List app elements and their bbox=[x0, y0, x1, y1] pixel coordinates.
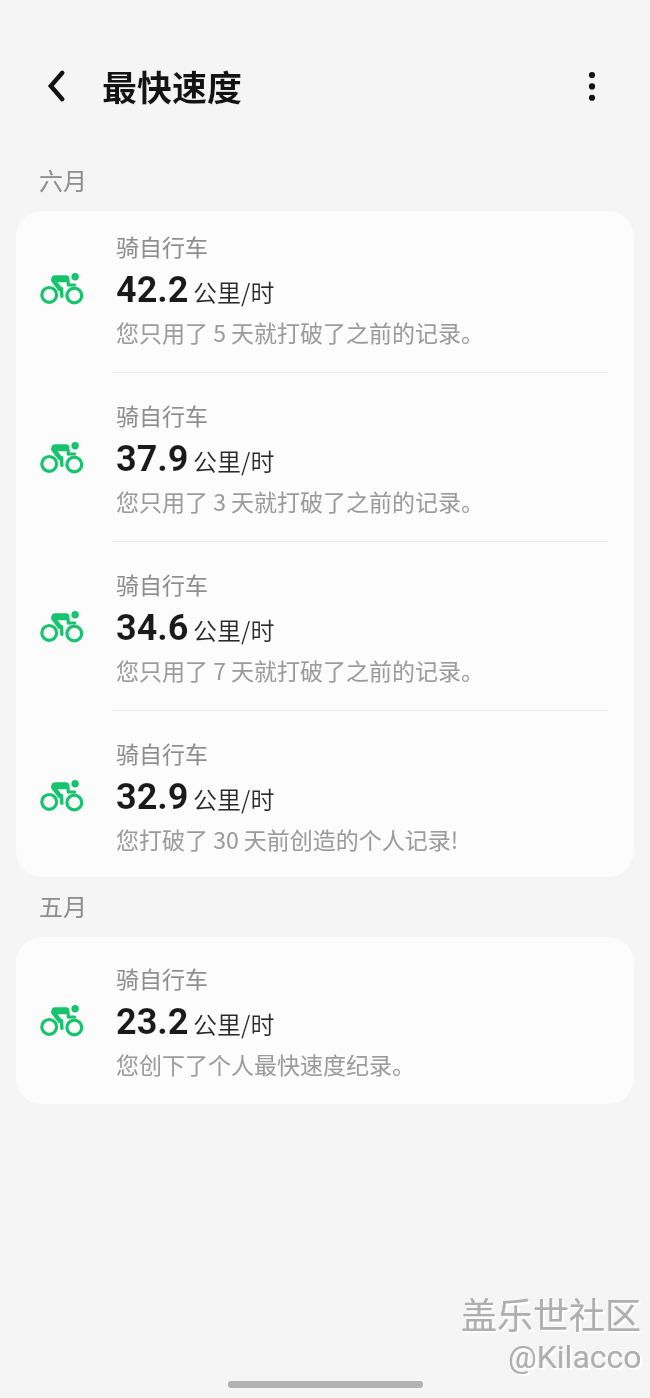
staticText: 骑自行车 bbox=[116, 398, 208, 431]
staticText: 五月 bbox=[39, 888, 87, 923]
button[interactable]: 骑自行车 bbox=[16, 937, 634, 1104]
staticText: 您只用了 3 天就打破了之前的记录。 bbox=[116, 484, 485, 517]
staticText: 34.6 bbox=[116, 607, 189, 649]
staticText: 您只用了 5 天就打破了之前的记录。 bbox=[116, 315, 485, 348]
staticText: @Kilacco bbox=[510, 1340, 644, 1378]
staticText: 您打破了 30 天前创造的个人记录! bbox=[116, 822, 459, 855]
staticText: @Kilacco bbox=[508, 1338, 642, 1376]
button[interactable]: 骑自行车 bbox=[16, 542, 634, 710]
staticText: 公里/时 bbox=[193, 443, 275, 478]
button[interactable]: 骑自行车 bbox=[16, 211, 634, 372]
button[interactable]: More options bbox=[562, 56, 622, 116]
button[interactable]: 骑自行车 bbox=[16, 373, 634, 541]
staticText: 23.2 bbox=[116, 1001, 189, 1043]
button[interactable]: Back bbox=[18, 56, 78, 116]
staticText: 骑自行车 bbox=[116, 567, 208, 600]
staticText: 最快速度 bbox=[102, 60, 243, 111]
staticText: 32.9 bbox=[116, 776, 189, 818]
staticText: 公里/时 bbox=[193, 274, 275, 309]
staticText: 公里/时 bbox=[193, 781, 275, 816]
staticText: 您只用了 7 天就打破了之前的记录。 bbox=[116, 653, 485, 686]
staticText: 42.2 bbox=[116, 269, 189, 311]
staticText: 骑自行车 bbox=[116, 736, 208, 769]
staticText: 公里/时 bbox=[193, 1006, 275, 1041]
button[interactable]: 骑自行车 bbox=[16, 711, 634, 877]
staticText: 37.9 bbox=[116, 438, 189, 480]
staticText: 公里/时 bbox=[193, 612, 275, 647]
staticText: 六月 bbox=[39, 162, 87, 197]
staticText: 骑自行车 bbox=[116, 229, 208, 262]
staticText: 您创下了个人最快速度纪录。 bbox=[116, 1047, 415, 1080]
staticText: 骑自行车 bbox=[116, 961, 208, 994]
staticText: 盖乐世社区 bbox=[463, 1289, 644, 1341]
staticText: 盖乐世社区 bbox=[461, 1287, 642, 1339]
